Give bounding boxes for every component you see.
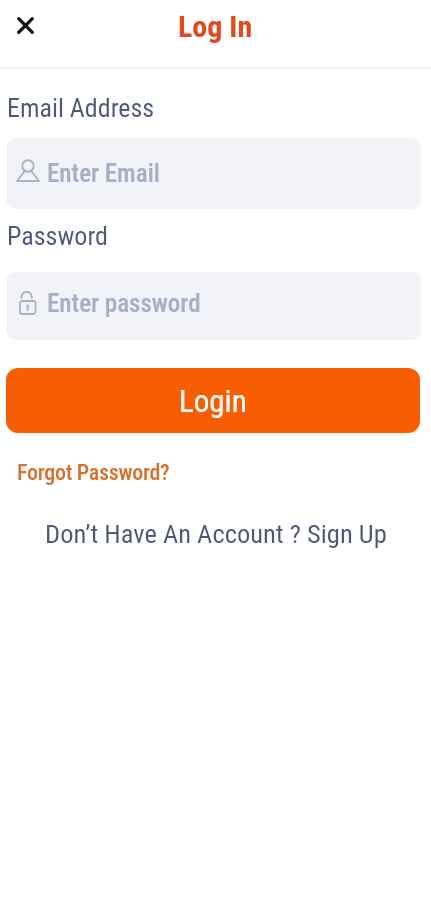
button[interactable]: [10, 10, 40, 40]
button[interactable]: [6, 138, 421, 209]
staticText: Password: [7, 221, 108, 251]
button[interactable]: Login: [6, 368, 420, 433]
staticText: Login: [179, 383, 247, 419]
staticText: Log In: [178, 9, 253, 44]
staticText: Email Address: [7, 93, 155, 123]
button[interactable]: Forgot Password?: [17, 460, 170, 486]
staticText: Enter password: [47, 289, 201, 318]
button[interactable]: [6, 272, 421, 340]
button[interactable]: Don’t Have An Account ? Sign Up: [45, 518, 387, 549]
staticText: Enter Email: [47, 159, 160, 188]
